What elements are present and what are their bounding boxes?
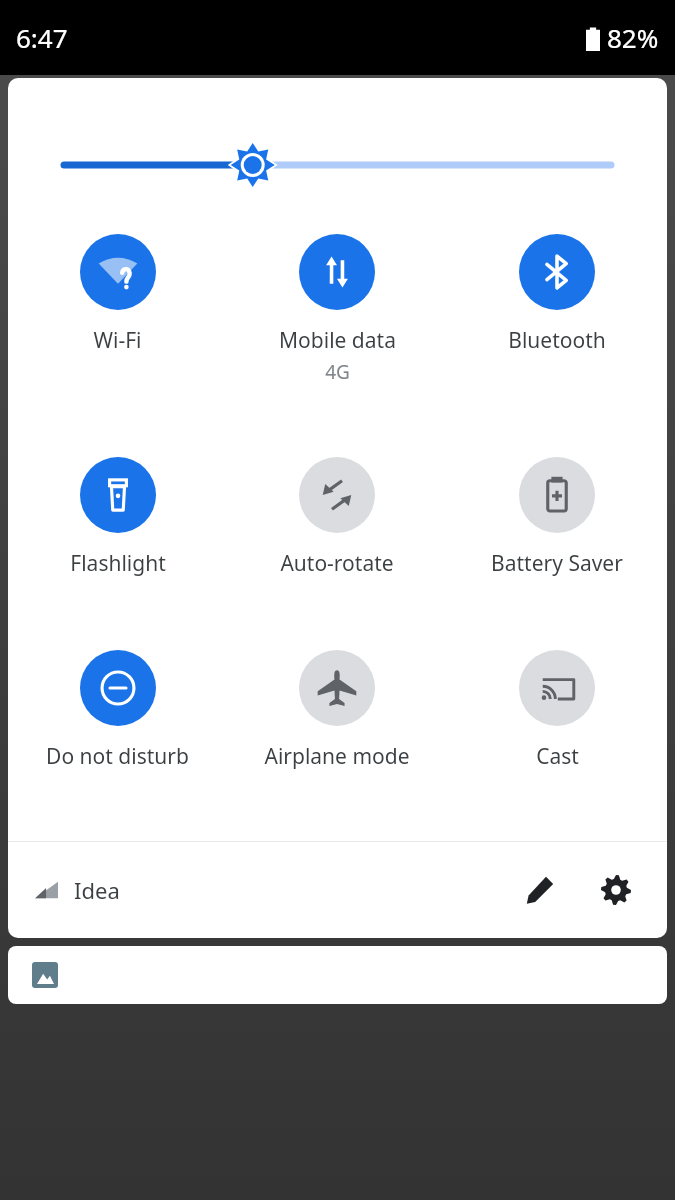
button[interactable]: Brightness bbox=[8, 140, 667, 190]
button[interactable]: Mobile data bbox=[227, 232, 447, 387]
button[interactable]: Battery Saver bbox=[447, 455, 667, 580]
button[interactable]: Bluetooth bbox=[447, 232, 667, 357]
staticText: Flashlight bbox=[70, 549, 166, 578]
button[interactable]: Edit bbox=[513, 863, 567, 917]
button[interactable]: Cast bbox=[447, 648, 667, 773]
staticText: Wi-Fi bbox=[93, 326, 142, 355]
button[interactable]: Idea bbox=[32, 867, 120, 913]
button[interactable] bbox=[8, 946, 667, 1004]
button[interactable]: Flashlight bbox=[8, 455, 227, 580]
staticText: 6:47 bbox=[16, 20, 68, 55]
staticText: 4G bbox=[325, 359, 350, 385]
button[interactable]: Wi-Fi bbox=[8, 232, 227, 357]
staticText: Bluetooth bbox=[508, 326, 606, 355]
staticText: Auto-rotate bbox=[280, 549, 394, 578]
staticText: Cast bbox=[536, 742, 579, 771]
staticText: Mobile data bbox=[279, 326, 396, 355]
staticText: Battery Saver bbox=[491, 549, 623, 578]
button[interactable]: Airplane mode bbox=[227, 648, 447, 773]
button[interactable]: Do not disturb bbox=[8, 648, 227, 773]
button[interactable]: Auto-rotate bbox=[227, 455, 447, 580]
staticText: Airplane mode bbox=[264, 742, 410, 771]
staticText: Do not disturb bbox=[46, 742, 189, 771]
button[interactable]: Settings bbox=[589, 863, 643, 917]
staticText: 82% bbox=[607, 20, 659, 55]
staticText: Idea bbox=[74, 875, 120, 905]
